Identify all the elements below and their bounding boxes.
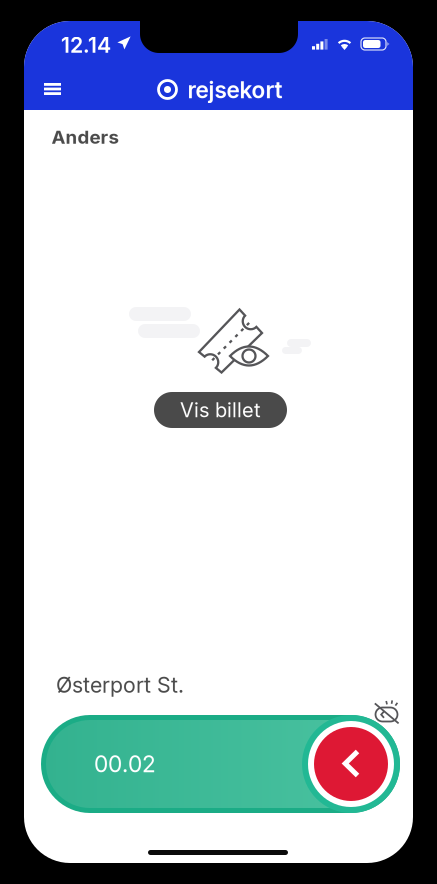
staticText: 00.02	[94, 750, 156, 778]
staticText: Østerport St.	[56, 672, 184, 698]
button[interactable]: Vis billet	[154, 392, 287, 428]
staticText: Vis billet	[180, 398, 261, 422]
button[interactable]: 00.02	[41, 715, 400, 813]
staticText: Anders	[51, 126, 118, 148]
button[interactable]: Menu	[30, 68, 75, 110]
staticText: rejsekort	[187, 76, 282, 104]
staticText: 12.14	[61, 32, 111, 58]
